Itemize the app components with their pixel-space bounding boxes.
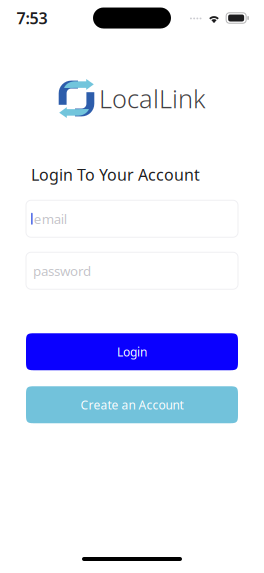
button[interactable]: password: [26, 252, 238, 289]
button[interactable]: Login: [26, 333, 238, 370]
staticText: Login: [117, 344, 147, 360]
staticText: 7:53: [16, 7, 47, 29]
staticText: Login To Your Account: [31, 164, 200, 185]
button[interactable]: Create an Account: [26, 386, 238, 423]
staticText: password: [33, 262, 91, 280]
button[interactable]: email: [26, 200, 238, 237]
staticText: LocalLink: [99, 82, 206, 115]
staticText: email: [34, 210, 67, 228]
staticText: Create an Account: [80, 397, 183, 413]
